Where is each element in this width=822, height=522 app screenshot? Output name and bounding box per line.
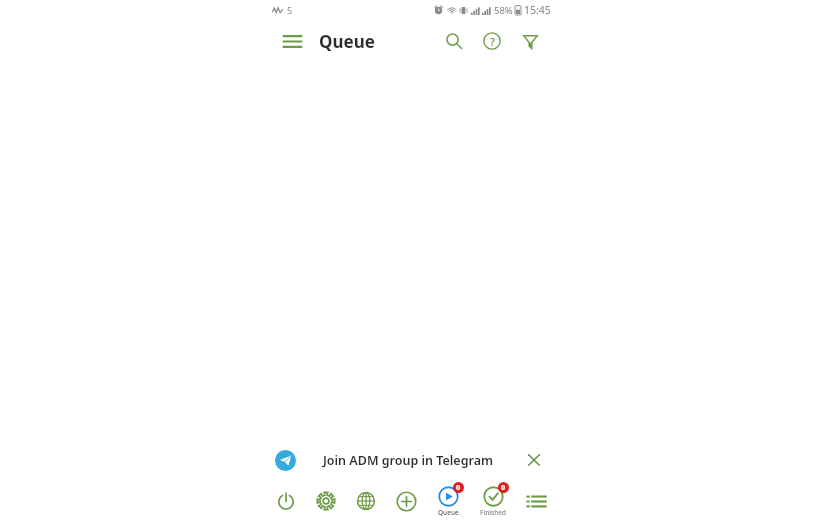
button[interactable]: Power [267, 480, 305, 522]
staticText: 5 [287, 4, 293, 16]
button[interactable]: Browser [347, 480, 385, 522]
staticText: 0 [456, 483, 461, 493]
staticText: ? [490, 34, 495, 49]
button[interactable]: Add download [387, 480, 425, 522]
staticText: 15:45 [524, 3, 551, 17]
button[interactable]: Open navigation menu [275, 24, 309, 58]
button[interactable]: Filter [513, 24, 547, 58]
staticText: 58% [494, 4, 513, 17]
staticText: Join ADM group in Telegram [323, 452, 493, 469]
button[interactable]: Settings [307, 480, 345, 522]
button[interactable]: Close banner [521, 447, 547, 473]
button[interactable]: 0 [471, 480, 515, 522]
button[interactable]: Join ADM group in Telegram [265, 440, 557, 480]
button[interactable]: More [517, 480, 555, 522]
staticText: Queue [438, 508, 459, 517]
staticText: 0 [501, 483, 506, 493]
button[interactable]: Search [437, 24, 471, 58]
staticText: Queue [319, 30, 375, 53]
staticText: Finished [480, 508, 507, 517]
button[interactable]: 0 [427, 480, 469, 522]
button[interactable]: Help [475, 24, 509, 58]
